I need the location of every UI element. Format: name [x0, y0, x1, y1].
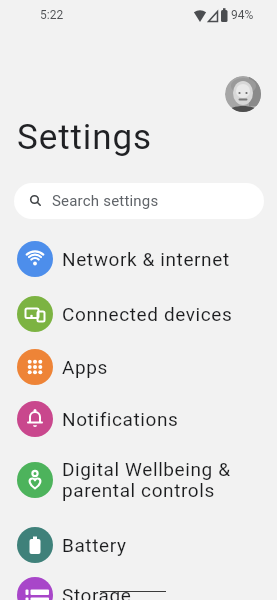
button[interactable]: Search settings	[14, 183, 264, 219]
button[interactable]	[225, 76, 261, 112]
staticText: Settings	[17, 117, 152, 158]
button[interactable]: Apps	[0, 340, 277, 393]
staticText: Connected devices	[62, 303, 233, 325]
staticText: Notifications	[62, 408, 179, 430]
button[interactable]: Digital Wellbeing & parental controls	[0, 447, 277, 513]
staticText: Search settings	[52, 192, 159, 210]
staticText: 94%	[231, 8, 254, 22]
button[interactable]: Connected devices	[0, 287, 277, 340]
staticText: Network & internet	[62, 248, 230, 270]
staticText: Storage	[62, 584, 132, 600]
button[interactable]: Battery	[0, 518, 277, 571]
staticText: 5:22	[40, 8, 64, 22]
button[interactable]: Storage	[0, 568, 277, 600]
button[interactable]: Notifications	[0, 392, 277, 445]
staticText: Apps	[62, 356, 108, 378]
button[interactable]: Network & internet	[0, 232, 277, 285]
staticText: Battery	[62, 534, 127, 556]
staticText: Digital Wellbeing & parental controls	[62, 458, 231, 502]
